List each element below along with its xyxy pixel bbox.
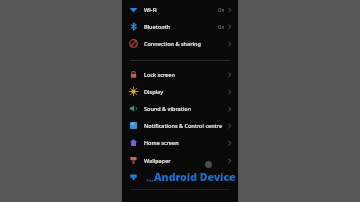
button[interactable]: Notifications & Control centre (122, 117, 238, 134)
button[interactable]: Bluetooth (122, 18, 238, 35)
staticText: Home screen (144, 139, 179, 146)
button[interactable]: Lock screen (122, 66, 238, 83)
staticText: Display (144, 88, 164, 95)
staticText: Connection & sharing (144, 40, 201, 47)
staticText: On (218, 7, 225, 13)
button[interactable]: Sound & vibration (122, 100, 238, 117)
button[interactable]: Wi-Fi (122, 1, 238, 18)
button[interactable]: Display (122, 83, 238, 100)
staticText: The (146, 178, 154, 184)
staticText: Notifications & Control centre (144, 122, 223, 129)
staticText: On (218, 24, 225, 30)
button[interactable]: Device info (122, 169, 238, 186)
staticText: Wallpaper (144, 157, 171, 164)
staticText: Sound & vibration (144, 105, 192, 112)
button[interactable]: Wallpaper (122, 152, 238, 169)
staticText: Wi-Fi (144, 6, 157, 13)
staticText: Android Device (154, 170, 236, 184)
button[interactable]: Home screen (122, 134, 238, 151)
staticText: Bluetooth (144, 23, 171, 30)
button[interactable]: Connection & sharing (122, 35, 238, 52)
staticText: Lock screen (144, 71, 175, 78)
